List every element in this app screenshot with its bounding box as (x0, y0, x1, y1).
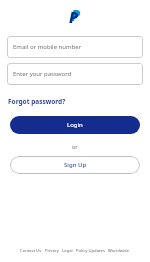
staticText: P (71, 5, 81, 25)
staticText: Email or mobile number (13, 43, 82, 51)
button[interactable]: Privacy (45, 248, 59, 254)
button[interactable]: Worldwide (108, 248, 130, 254)
button[interactable]: Contact Us (20, 248, 42, 254)
button[interactable]: Enter your password (7, 63, 143, 85)
staticText: or (72, 143, 78, 150)
button[interactable]: Login (10, 116, 140, 134)
button[interactable]: Sign Up (10, 156, 140, 174)
staticText: Login (67, 121, 83, 129)
staticText: Sign Up (64, 161, 87, 169)
button[interactable]: Policy Updates (76, 248, 105, 254)
button[interactable]: Email or mobile number (7, 36, 143, 58)
staticText: P (69, 7, 79, 27)
button[interactable]: Legal (62, 248, 73, 254)
staticText: Enter your password (13, 70, 72, 78)
button[interactable]: Forgot password? (8, 97, 66, 106)
